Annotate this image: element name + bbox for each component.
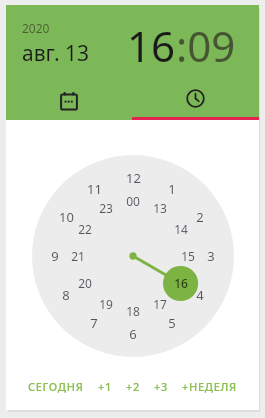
staticText: 17 [153, 296, 167, 312]
staticText: 14 [174, 221, 188, 237]
staticText: 22 [78, 221, 92, 237]
staticText: 13 [153, 200, 167, 216]
button[interactable]: 16 [123, 16, 240, 75]
staticText: 3 [207, 247, 215, 265]
staticText: 4 [196, 286, 204, 304]
staticText: 19 [99, 296, 113, 312]
staticText: 8 [62, 286, 70, 304]
staticText: 5 [168, 314, 176, 332]
button[interactable]: +3 [152, 373, 170, 400]
button[interactable]: Select date [6, 83, 132, 120]
staticText: СЕГОДНЯ [28, 379, 84, 394]
button[interactable]: 2020 [18, 18, 93, 70]
button[interactable]: +1 [96, 373, 114, 400]
button[interactable]: +2 [124, 373, 142, 400]
staticText: 2020 [22, 20, 50, 36]
staticText: +3 [154, 379, 168, 394]
staticText: 9 [51, 247, 59, 265]
staticText: 7 [90, 314, 98, 332]
staticText: +2 [126, 379, 140, 394]
button[interactable]: Hour picker dial [32, 155, 234, 357]
button[interactable]: СЕГОДНЯ [26, 373, 86, 400]
staticText: +НЕДЕЛЯ [182, 379, 237, 394]
staticText: 16 [174, 275, 188, 291]
button[interactable]: Select time [132, 83, 259, 120]
staticText: 12 [126, 169, 141, 187]
staticText: 18 [126, 303, 140, 319]
staticText: 00 [126, 193, 140, 209]
staticText: 1 [168, 180, 176, 198]
staticText: 21 [71, 248, 85, 264]
staticText: 11 [87, 180, 102, 198]
staticText: 2 [196, 208, 204, 226]
staticText: 16 [127, 17, 176, 74]
staticText: +1 [98, 379, 112, 394]
staticText: 23 [99, 200, 113, 216]
staticText: :09 [176, 17, 236, 74]
button[interactable]: +НЕДЕЛЯ [180, 373, 239, 400]
staticText: 6 [129, 325, 137, 343]
staticText: 20 [78, 275, 92, 291]
staticText: 15 [181, 248, 195, 264]
staticText: 10 [59, 208, 74, 226]
staticText: авг. 13 [22, 39, 89, 68]
